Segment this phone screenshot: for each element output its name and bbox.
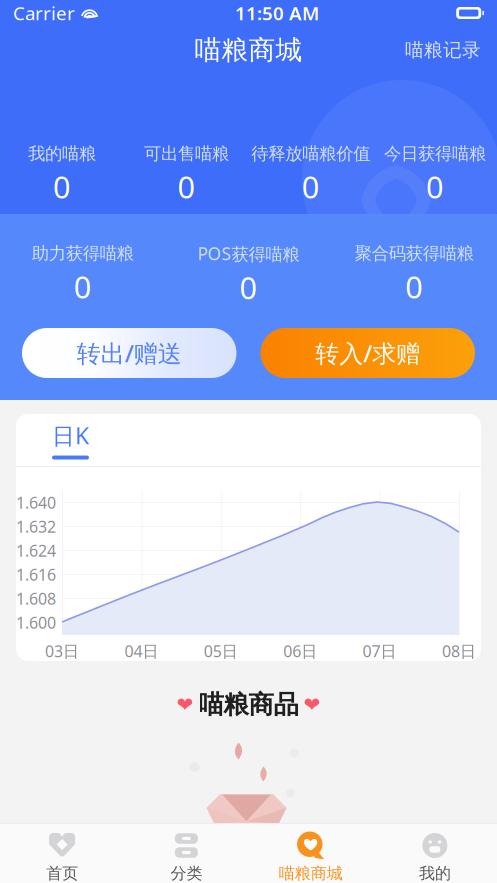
button[interactable]: 日K <box>52 420 89 459</box>
staticText: 喵粮商城 <box>279 863 343 883</box>
staticText: 待释放喵粮价值 <box>251 143 370 164</box>
staticText: 07日 <box>363 640 397 662</box>
button[interactable]: 分类 <box>124 823 248 883</box>
staticText: 11:50 AM <box>235 1 319 25</box>
staticText: 0 <box>177 166 195 207</box>
staticText: 08日 <box>442 640 476 662</box>
staticText: 0 <box>426 166 444 207</box>
staticText: 喵粮商品 <box>198 689 298 720</box>
button[interactable]: 转出/赠送 <box>22 328 236 378</box>
staticText: 1.616 <box>16 564 56 585</box>
staticText: 分类 <box>170 863 202 883</box>
button[interactable]: 喵粮记录 <box>397 30 489 69</box>
staticText: 我的喵粮 <box>28 143 96 164</box>
staticText: 06日 <box>283 640 317 662</box>
staticText: 0 <box>53 166 71 207</box>
staticText: ❤ <box>176 693 193 716</box>
staticText: 1.608 <box>16 588 56 609</box>
staticText: 1.640 <box>16 492 56 513</box>
staticText: 1.632 <box>16 516 56 537</box>
staticText: 我的 <box>419 863 451 883</box>
button[interactable]: 首页 <box>0 823 124 883</box>
staticText: ❤ <box>303 693 320 716</box>
staticText: 助力获得喵粮 <box>32 243 134 264</box>
staticText: 0 <box>302 166 320 207</box>
staticText: Carrier <box>13 1 75 25</box>
staticText: 喵粮商城 <box>194 34 302 66</box>
staticText: 可出售喵粮 <box>144 143 229 164</box>
staticText: 日K <box>52 420 89 450</box>
staticText: 0 <box>74 266 92 307</box>
button[interactable]: 转入/求赠 <box>260 328 475 378</box>
staticText: 0 <box>405 266 423 307</box>
staticText: 0 <box>239 267 257 308</box>
staticText: 03日 <box>45 640 79 662</box>
button[interactable]: 我的 <box>373 823 497 883</box>
staticText: 今日获得喵粮 <box>384 143 486 164</box>
staticText: 转入/求赠 <box>315 337 420 369</box>
staticText: 喵粮记录 <box>405 38 481 61</box>
staticText: 05日 <box>204 640 238 662</box>
staticText: 聚合码获得喵粮 <box>355 243 474 264</box>
staticText: 首页 <box>46 863 78 883</box>
staticText: 1.600 <box>16 612 56 633</box>
button[interactable]: 喵粮商城 <box>248 823 373 883</box>
staticText: 转出/赠送 <box>77 337 182 369</box>
staticText: 1.624 <box>16 540 56 561</box>
staticText: 04日 <box>124 640 158 662</box>
staticText: POS获得喵粮 <box>197 242 299 265</box>
